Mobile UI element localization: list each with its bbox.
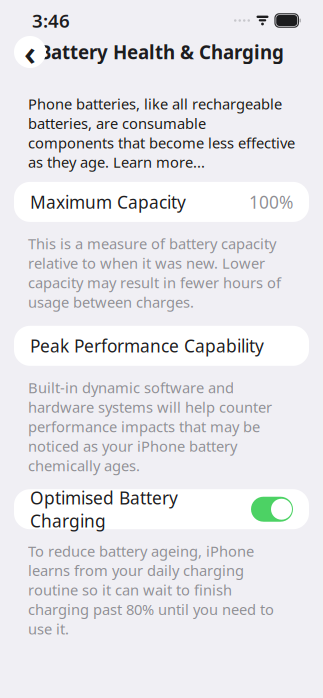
staticText: 3:46 [32,8,70,33]
staticText: ‹ [24,29,36,75]
staticText: This is a measure of battery capacity re… [28,234,281,312]
staticText: Maximum Capacity [30,190,186,213]
button[interactable]: Peak Performance Capability [0,326,323,366]
button[interactable]: Optimised Battery Charging [251,497,293,522]
staticText: Optimised Battery Charging [30,486,178,532]
staticText: To reduce battery ageing, iPhone learns … [28,541,274,639]
button[interactable]: Back [14,36,46,68]
button[interactable]: Optimised Battery Charging [0,489,323,529]
staticText: Built-in dynamic software and hardware s… [28,378,272,475]
staticText: 100% [249,190,293,213]
staticText: Phone batteries, like all rechargeable b… [28,94,295,172]
button[interactable]: Maximum Capacity [0,182,323,222]
staticText: Battery Health & Charging [39,40,284,64]
staticText: Peak Performance Capability [30,334,264,357]
